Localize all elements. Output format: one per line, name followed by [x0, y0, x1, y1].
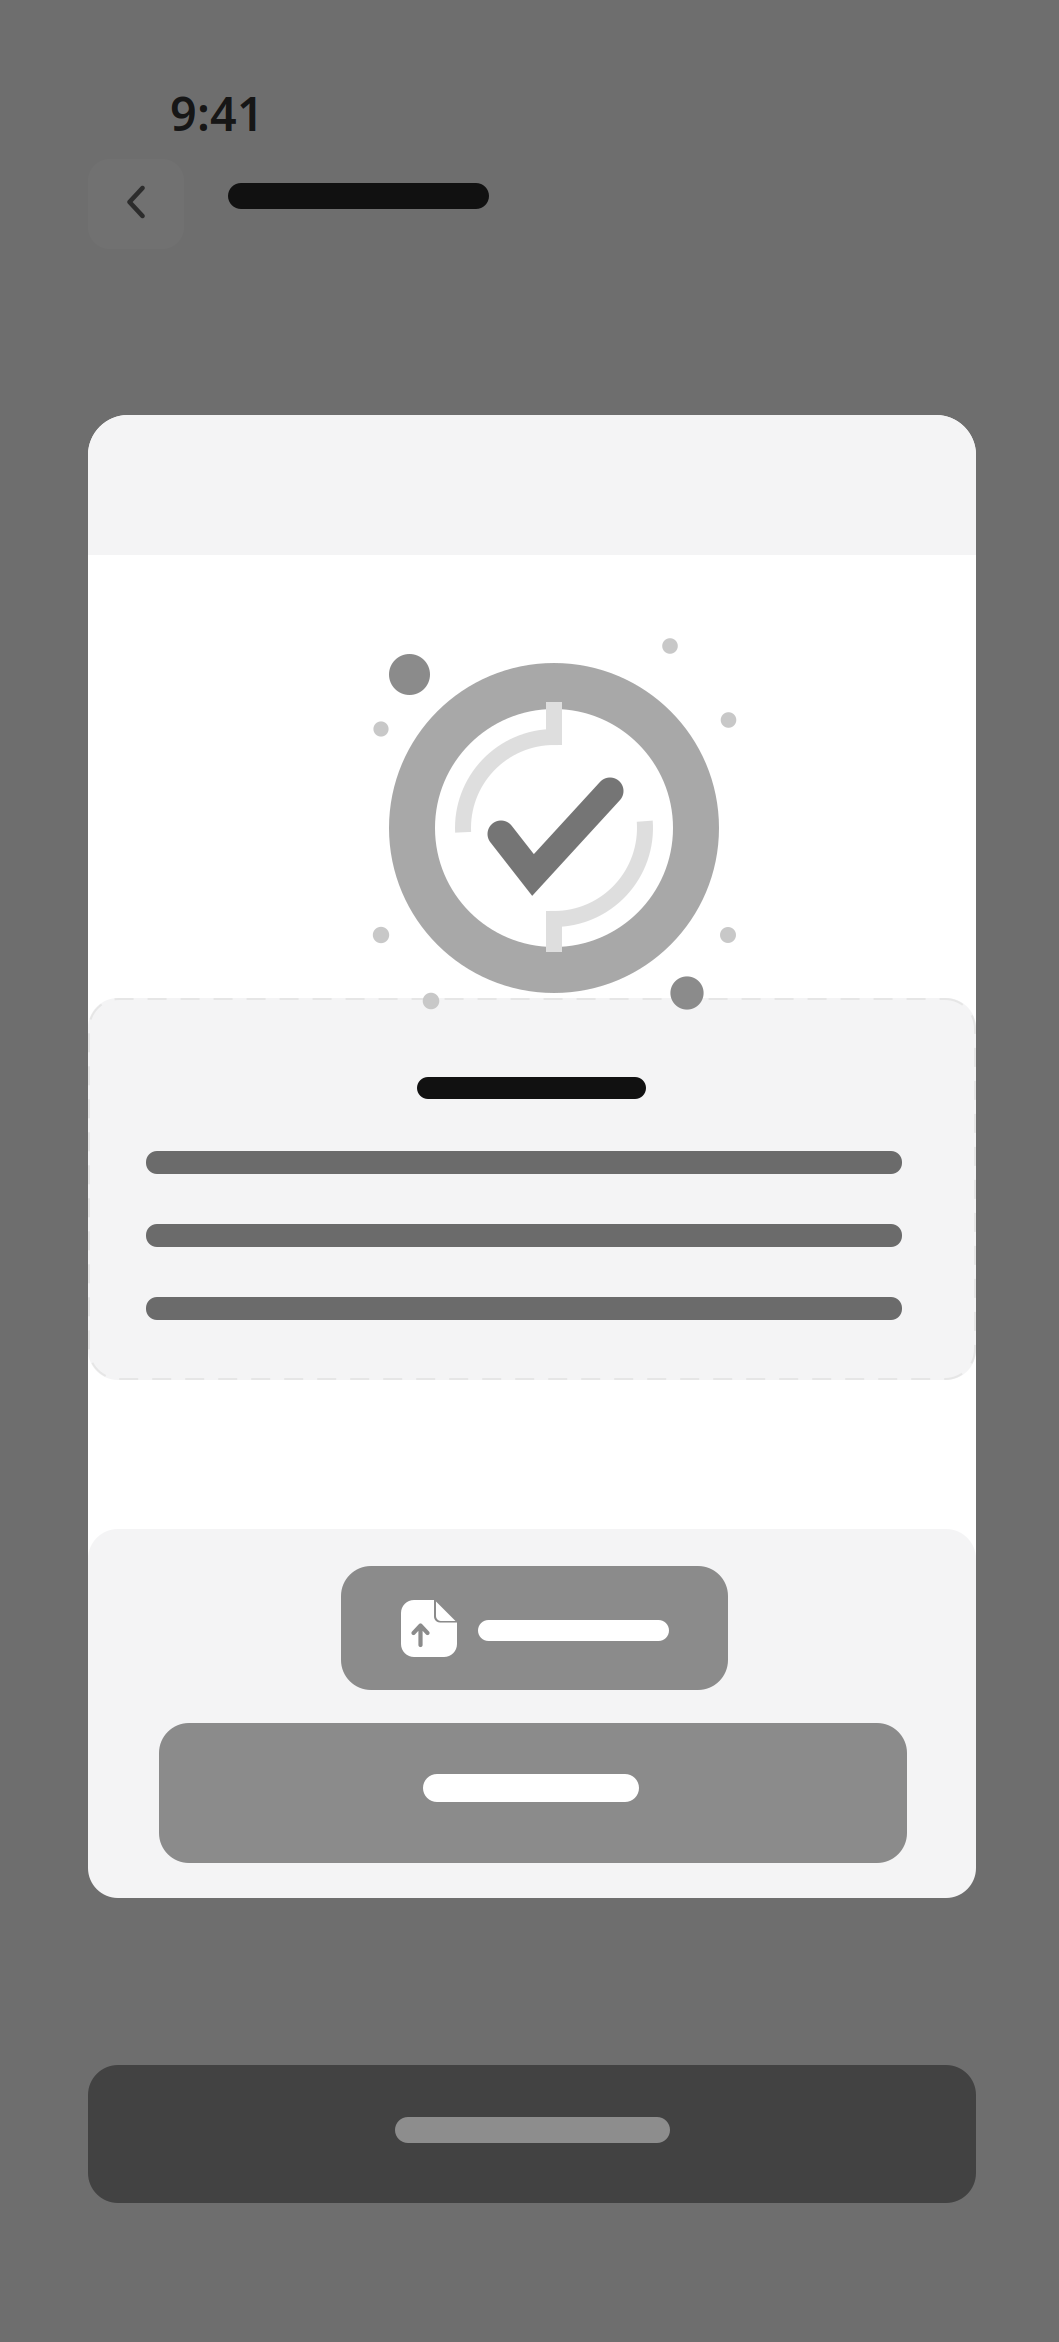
button[interactable]: Back [88, 159, 184, 249]
button[interactable]: Continue [159, 1723, 907, 1863]
button[interactable]: Tab bar [88, 2065, 976, 2203]
button[interactable]: Upload document [341, 1566, 728, 1690]
staticText: 9:41 [170, 82, 264, 144]
